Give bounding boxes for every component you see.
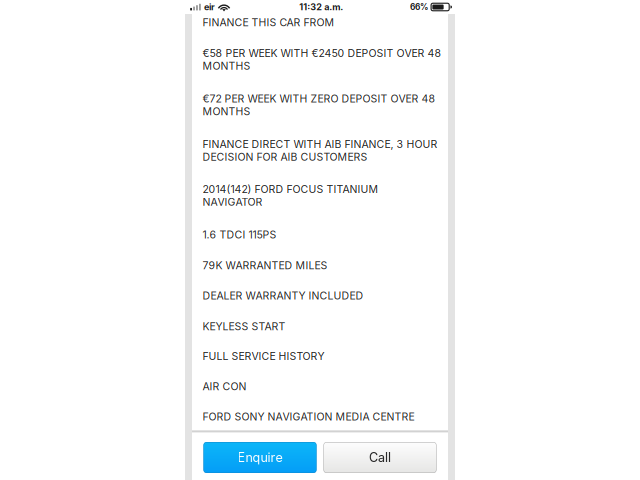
staticText: eir [204,1,215,12]
staticText: 66% [410,2,428,12]
staticText: FORD SONY NAVIGATION MEDIA CENTRE [202,410,414,423]
staticText: 11:32 a.m. [299,1,343,12]
staticText: Enquire [237,450,282,465]
button[interactable]: Call [323,442,436,473]
staticText: KEYLESS START [202,320,285,333]
staticText: €58 PER WEEK WITH €2450 DEPOSIT OVER 48 … [202,47,441,72]
staticText: 1.6 TDCI 115PS [202,228,276,241]
staticText: AIR CON [202,380,246,393]
staticText: DEALER WARRANTY INCLUDED [202,289,363,302]
staticText: FINANCE DIRECT WITH AIB FINANCE, 3 HOUR … [202,138,437,163]
staticText: FULL SERVICE HISTORY [202,350,324,362]
staticText: FINANCE THIS CAR FROM [202,16,334,29]
staticText: 79K WARRANTED MILES [202,259,327,272]
staticText: €72 PER WEEK WITH ZERO DEPOSIT OVER 48 M… [202,92,435,118]
button[interactable]: Enquire [203,442,316,473]
staticText: Call [369,450,391,465]
staticText: 2014(142) FORD FOCUS TITANIUM NAVIGATOR [202,183,378,208]
